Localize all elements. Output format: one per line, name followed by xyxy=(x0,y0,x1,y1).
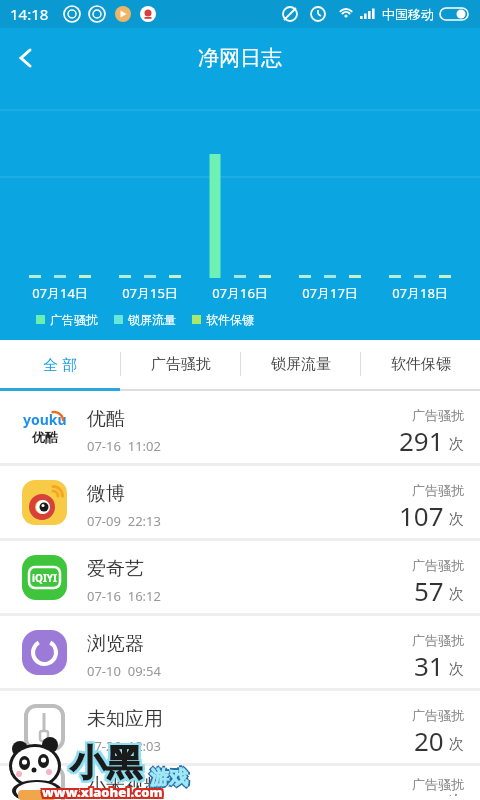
staticText: 07-10 09:54 xyxy=(87,662,161,680)
staticText: 次 xyxy=(449,735,464,754)
staticText: www.xiaohei.com xyxy=(42,785,163,800)
button[interactable]: youku xyxy=(0,391,480,463)
staticText: youku xyxy=(23,410,67,429)
staticText: 广告骚扰 xyxy=(412,407,464,423)
button[interactable]: 浏览器 xyxy=(0,616,480,688)
staticText: 小黑 xyxy=(70,742,142,787)
staticText: 次 xyxy=(449,510,464,529)
staticText: 107 xyxy=(399,498,444,533)
staticText: 游戏 xyxy=(150,766,188,790)
staticText: 广告骚扰 xyxy=(412,482,464,498)
staticText: 小米视频 xyxy=(87,774,163,798)
staticText: www.xiaohei.com xyxy=(42,783,163,800)
staticText: 全 部 xyxy=(43,354,77,374)
staticText: 07-26 12:03 xyxy=(87,737,161,755)
staticText: 次 xyxy=(449,585,464,604)
staticText: 07月15日 xyxy=(105,284,195,302)
staticText: 07月17日 xyxy=(285,284,375,302)
staticText: www.xiaohei.com xyxy=(40,783,161,800)
staticText: 广告骚扰 xyxy=(412,776,464,792)
staticText: 微博 xyxy=(87,482,125,506)
button[interactable]: 微博 xyxy=(0,466,480,538)
staticText: 游戏 xyxy=(150,764,188,788)
staticText: 07-16 11:02 xyxy=(87,437,161,455)
staticText: 未知应用 xyxy=(87,707,163,731)
button[interactable]: 全 部 xyxy=(0,340,120,388)
staticText: 锁屏流量 xyxy=(271,355,331,374)
staticText: 广告骚扰 xyxy=(412,557,464,573)
button[interactable] xyxy=(6,38,46,78)
staticText: www.xiaohei.com xyxy=(44,781,165,799)
staticText: www.xiaohei.com xyxy=(40,781,161,799)
staticText: www.xiaohei.com xyxy=(44,785,165,800)
button[interactable]: 广告骚扰 xyxy=(121,340,240,388)
button[interactable]: 锁屏流量 xyxy=(241,340,360,388)
staticText: 广告骚扰 xyxy=(50,312,98,327)
button[interactable]: 小米视频 xyxy=(0,766,480,800)
staticText: 07月16日 xyxy=(195,284,285,302)
staticText: 广告骚扰 xyxy=(151,355,211,374)
staticText: 优酷 xyxy=(87,407,125,431)
staticText: 小黑 xyxy=(68,742,140,787)
staticText: 中国移动 xyxy=(382,6,434,22)
staticText: 优酷 xyxy=(32,429,58,445)
staticText: 小黑 xyxy=(68,738,140,783)
staticText: 07月18日 xyxy=(375,284,465,302)
staticText: 07月14日 xyxy=(15,284,105,302)
staticText: 小黑 xyxy=(72,742,144,787)
staticText: 291 xyxy=(399,423,444,458)
button[interactable]: 软件保镖 xyxy=(361,340,480,388)
staticText: 小黑 xyxy=(70,740,142,785)
staticText: 14:18 xyxy=(10,4,49,24)
staticText: 07-16 16:12 xyxy=(87,587,161,605)
staticText: 20 xyxy=(414,723,444,758)
staticText: 游戏 xyxy=(148,766,186,790)
staticText: 游戏 xyxy=(150,768,188,792)
staticText: 次 xyxy=(449,792,464,796)
staticText: 锁屏流量 xyxy=(128,312,176,327)
staticText: 小黑 xyxy=(70,738,142,783)
staticText: 31 xyxy=(414,648,444,683)
button[interactable]: 未知应用 xyxy=(0,691,480,763)
staticText: www.xiaohei.com xyxy=(44,783,165,800)
staticText: 07-09 22:13 xyxy=(87,512,161,530)
staticText: 爱奇艺 xyxy=(87,557,144,581)
staticText: 小黑 xyxy=(68,740,140,785)
staticText: 次 xyxy=(449,660,464,679)
staticText: 游戏 xyxy=(152,766,190,790)
staticText: 广告骚扰 xyxy=(412,632,464,648)
staticText: 净网日志 xyxy=(198,45,282,71)
staticText: 广告骚扰 xyxy=(412,707,464,723)
staticText: 软件保镖 xyxy=(391,355,451,374)
staticText: 浏览器 xyxy=(87,632,144,656)
staticText: 小黑 xyxy=(72,740,144,785)
staticText: 软件保镖 xyxy=(206,312,254,327)
staticText: www.xiaohei.com xyxy=(40,785,161,800)
staticText: iQIYI xyxy=(32,571,57,585)
staticText: 次 xyxy=(449,435,464,454)
staticText: 小黑 xyxy=(72,738,144,783)
staticText: 57 xyxy=(414,573,444,608)
staticText: www.xiaohei.com xyxy=(42,781,163,799)
button[interactable]: iQIYI xyxy=(0,541,480,613)
